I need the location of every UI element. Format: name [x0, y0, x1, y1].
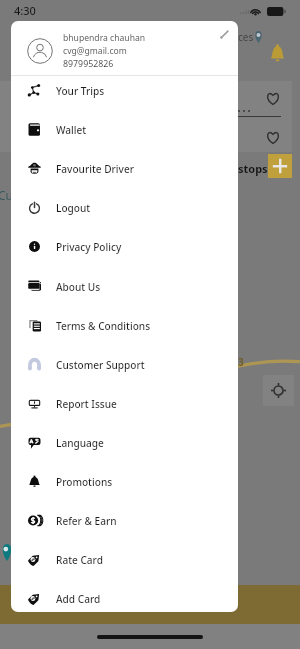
button[interactable]: Rate Card	[11, 540, 238, 579]
staticText: ces	[238, 30, 254, 44]
button[interactable]: Privacy Policy	[11, 227, 238, 266]
staticText: Refer & Earn	[56, 514, 117, 528]
staticText: Your Trips	[56, 84, 105, 98]
button[interactable]: About Us	[11, 267, 238, 306]
staticText: stops	[238, 161, 268, 176]
button[interactable]: Edit profile	[211, 21, 238, 48]
staticText: Logout	[56, 201, 91, 215]
staticText: 8979952826	[63, 58, 114, 70]
staticText: Favourite Driver	[56, 162, 134, 176]
button[interactable]: Your Trips	[11, 71, 238, 110]
staticText: Cur	[0, 187, 18, 203]
button[interactable]: Add Card	[11, 579, 238, 612]
staticText: Promotions	[56, 475, 113, 489]
staticText: cvg@gmail.com	[63, 45, 127, 57]
button[interactable]: Logout	[11, 188, 238, 227]
button[interactable]: Refer & Earn	[11, 501, 238, 540]
staticText: Language	[56, 436, 104, 450]
button[interactable]: Language	[11, 423, 238, 462]
button[interactable]: Report Issue	[11, 384, 238, 423]
button[interactable]: Favourite Driver	[11, 149, 238, 188]
staticText: Report Issue	[56, 397, 117, 411]
button[interactable]: Wallet	[11, 110, 238, 149]
staticText: Add Card	[56, 592, 101, 606]
staticText: About Us	[56, 280, 101, 294]
staticText: Wallet	[56, 123, 87, 137]
staticText: 4:30	[14, 3, 36, 18]
staticText: Customer Support	[56, 358, 145, 372]
button[interactable]: Customer Support	[11, 345, 238, 384]
staticText: bhupendra chauhan	[63, 32, 146, 44]
staticText: Terms & Conditions	[56, 319, 151, 333]
staticText: Rate Card	[56, 553, 103, 567]
staticText: 3	[238, 355, 244, 369]
button[interactable]: Promotions	[11, 462, 238, 501]
staticText: Privacy Policy	[56, 240, 122, 254]
button[interactable]: Terms & Conditions	[11, 306, 238, 345]
